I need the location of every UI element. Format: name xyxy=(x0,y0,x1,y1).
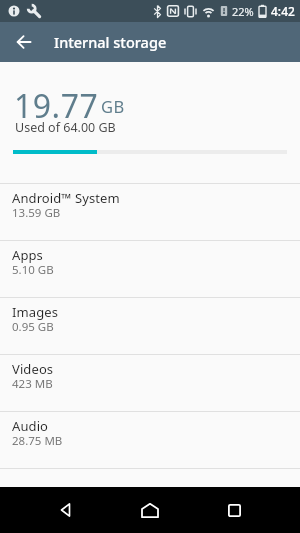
staticText: 19.77 xyxy=(14,84,99,128)
button[interactable]: Audio xyxy=(0,411,300,468)
staticText: 423 MB xyxy=(12,376,53,392)
staticText: Used of 64.00 GB xyxy=(15,119,116,136)
button[interactable] xyxy=(210,487,258,533)
button[interactable] xyxy=(42,487,90,533)
staticText: Images xyxy=(12,303,59,321)
staticText: 5.10 GB xyxy=(12,262,54,278)
staticText: Apps xyxy=(12,246,43,264)
staticText: Videos xyxy=(12,360,54,378)
button[interactable] xyxy=(0,22,48,62)
staticText: Audio xyxy=(12,417,49,435)
staticText: 4:42 xyxy=(271,3,295,19)
staticText: Android™ System xyxy=(12,189,120,207)
button[interactable]: Images xyxy=(0,297,300,354)
staticText: Internal storage xyxy=(54,32,167,52)
button[interactable] xyxy=(126,487,174,533)
staticText: 28.75 MB xyxy=(12,433,63,449)
staticText: 22% xyxy=(232,4,254,19)
staticText: 0.95 GB xyxy=(12,319,54,335)
button[interactable]: Videos xyxy=(0,354,300,411)
button[interactable]: Android™ System xyxy=(0,183,300,240)
staticText: 13.59 GB xyxy=(12,205,61,221)
button[interactable]: Apps xyxy=(0,240,300,297)
staticText: GB xyxy=(101,95,125,117)
